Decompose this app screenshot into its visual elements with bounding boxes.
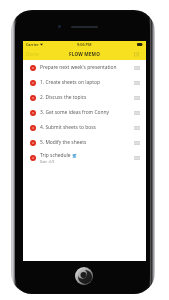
staticText: 1. Create sheets on laptop [40, 79, 100, 86]
staticText: Prepare next week's presentation [40, 64, 117, 71]
button[interactable]: 1. Create sheets on laptop [23, 75, 146, 90]
staticText: FLOW MEMO [69, 51, 101, 57]
staticText: 9:06 PM [77, 42, 92, 47]
staticText: 2. Discuss the topics [40, 94, 87, 101]
button[interactable]: Done [23, 48, 42, 60]
button[interactable]: Prepare next week's presentation [23, 60, 146, 75]
staticText: 4. Submit sheets to boss [40, 124, 96, 131]
button[interactable]: 4. Submit sheets to boss [23, 120, 146, 135]
staticText: 3. Get some ideas from Conny [40, 109, 110, 116]
button[interactable]: Trip schedule [23, 150, 146, 165]
staticText: Trip schedule [40, 152, 71, 159]
staticText: 5. Modify the sheets [40, 139, 87, 146]
button[interactable]: 5. Modify the sheets [23, 135, 146, 150]
button[interactable]: 3. Get some ideas from Conny [23, 105, 146, 120]
staticText: Carrier [26, 42, 39, 47]
button[interactable]: New memo [130, 49, 146, 59]
staticText: Date : 6/3 [40, 160, 55, 164]
staticText: Done [26, 51, 39, 57]
button[interactable]: 2. Discuss the topics [23, 90, 146, 105]
